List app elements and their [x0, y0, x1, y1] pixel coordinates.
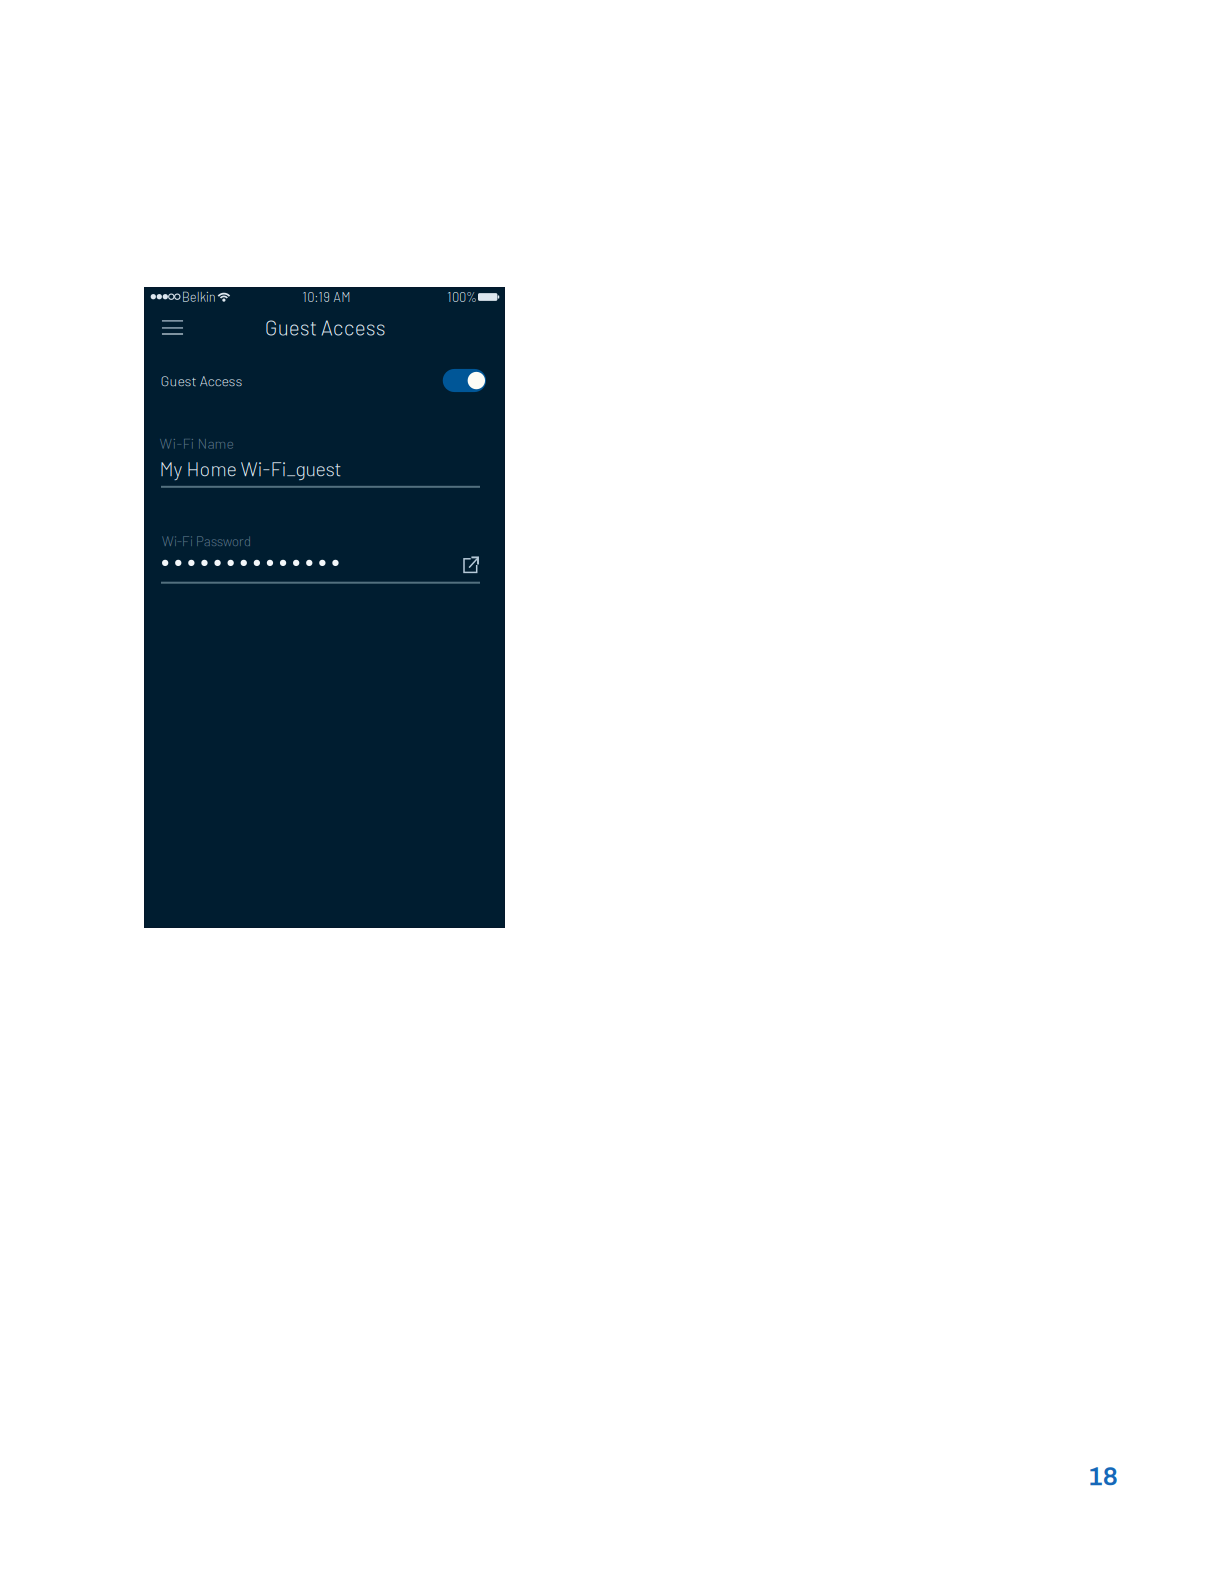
button[interactable]: Wi-Fi Password	[161, 530, 481, 590]
staticText: Belkin	[182, 289, 216, 304]
staticText: Wi-Fi Name	[159, 434, 234, 452]
button[interactable]: Wi-Fi Name	[161, 434, 481, 492]
button[interactable]: Guest Access	[162, 360, 486, 400]
staticText: 10:19 AM	[302, 289, 350, 305]
staticText: Wi-Fi Password	[162, 533, 251, 549]
staticText: Guest Access	[265, 315, 386, 340]
button[interactable]: Share Wi-Fi password	[452, 546, 490, 584]
staticText: 18	[1088, 1462, 1118, 1491]
staticText: 100%	[447, 289, 477, 305]
staticText: Guest Access	[160, 372, 242, 389]
button[interactable]: Menu	[150, 305, 194, 349]
staticText: My Home Wi-Fi_guest	[159, 457, 341, 480]
